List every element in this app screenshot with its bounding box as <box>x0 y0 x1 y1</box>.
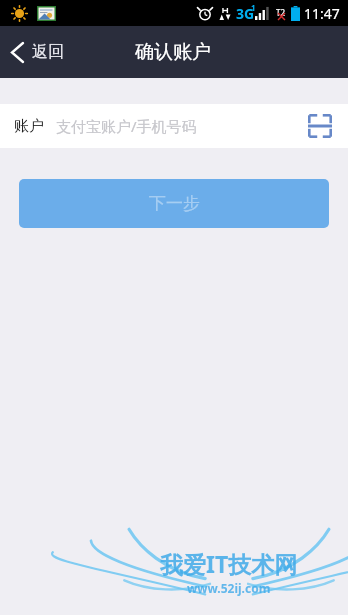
staticText: 1 <box>251 2 256 13</box>
staticText: 下一步 <box>149 193 200 214</box>
staticText: 3G <box>236 4 255 23</box>
button[interactable]: Scan QR code <box>298 104 342 148</box>
staticText: www.52ij.com <box>187 580 271 596</box>
button[interactable]: 返回 <box>0 26 78 78</box>
staticText: 返回 <box>32 42 64 62</box>
button[interactable]: 下一步 <box>19 179 329 228</box>
staticText: 11:47 <box>304 4 340 23</box>
staticText: 支付宝账户/手机号码 <box>56 116 298 136</box>
staticText: 我爱IT技术网 <box>160 548 298 579</box>
staticText: 账户 <box>14 117 44 136</box>
staticText: 确认账户 <box>135 40 211 64</box>
staticText: T2 <box>276 7 286 18</box>
